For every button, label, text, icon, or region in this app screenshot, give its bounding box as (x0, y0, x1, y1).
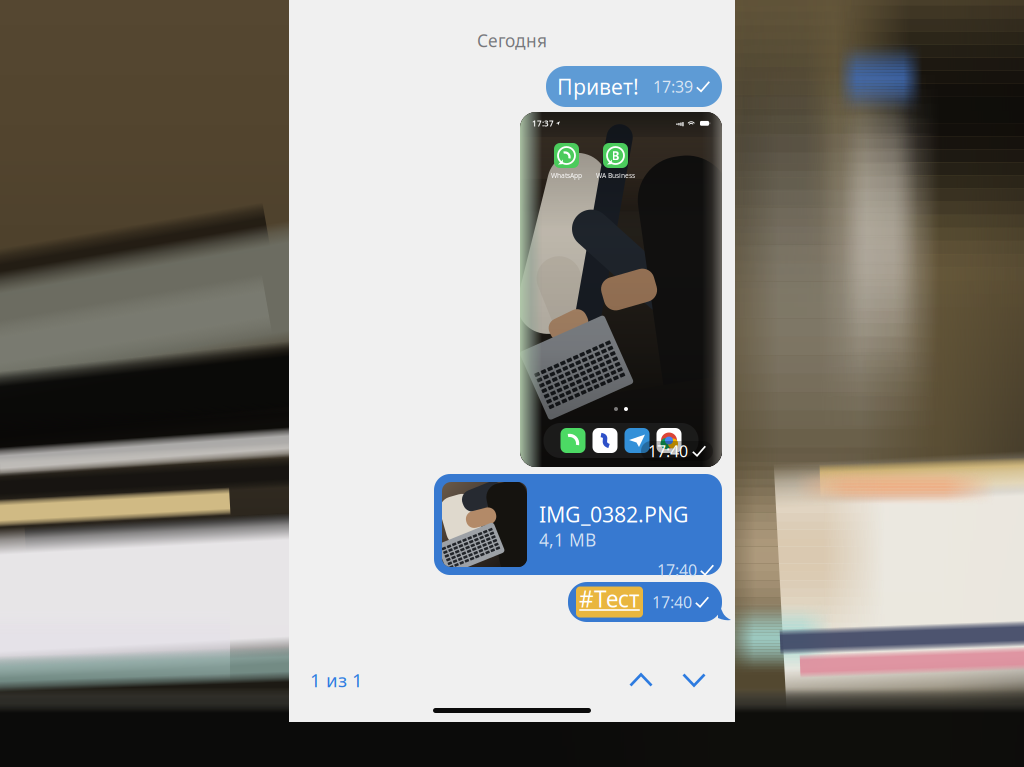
staticText: WhatsApp (551, 171, 582, 180)
staticText: 17:37 (532, 118, 554, 129)
staticText: WA Business (596, 171, 635, 180)
button[interactable]: 17:37 (520, 112, 722, 467)
button[interactable]: Next result (672, 664, 716, 696)
staticText: 17:40 (657, 559, 697, 581)
staticText: 17:40 (648, 440, 688, 462)
staticText: IMG_0382.PNG (539, 500, 689, 528)
staticText: 17:39 (653, 76, 693, 97)
staticText: 1 из 1 (310, 668, 363, 692)
button[interactable]: #Тест (568, 582, 722, 622)
button[interactable]: 1 из 1 (310, 660, 373, 700)
staticText: 17:40 (652, 591, 692, 613)
staticText: Сегодня (477, 29, 547, 52)
staticText: B (611, 147, 619, 163)
staticText: 4,1 MB (539, 528, 596, 551)
staticText: Привет! (557, 72, 639, 101)
staticText: #Тест (579, 584, 640, 614)
button[interactable]: Привет! (546, 66, 722, 107)
button[interactable]: IMG_0382.PNG (434, 474, 722, 575)
button[interactable]: Previous result (619, 664, 663, 696)
